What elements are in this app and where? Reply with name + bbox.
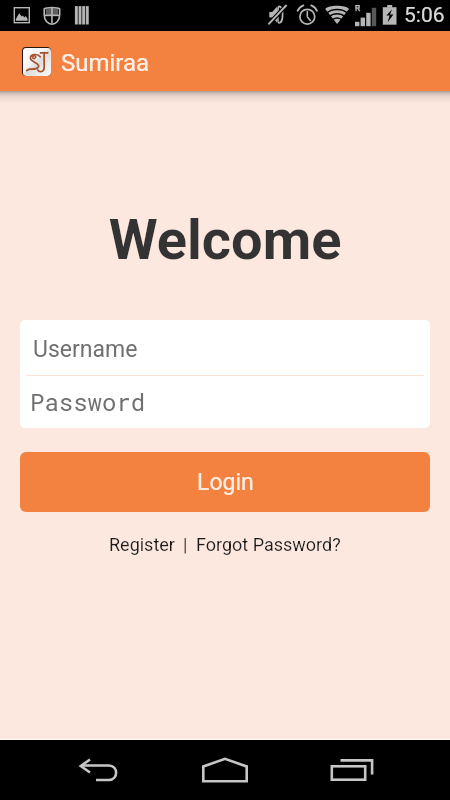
staticText: Welcome (0, 207, 450, 273)
staticText: 5:06 (404, 3, 445, 28)
button[interactable]: Back (67, 740, 135, 800)
staticText: Register (109, 534, 175, 555)
staticText: Username (33, 336, 138, 363)
button[interactable]: Home (191, 740, 259, 800)
staticText: | (183, 534, 188, 555)
button[interactable]: Sumiraa logo (22, 47, 51, 76)
staticText: Password (30, 386, 146, 418)
button[interactable]: Forgot Password? (196, 534, 341, 555)
button[interactable]: Username (20, 320, 430, 375)
button[interactable]: Register (109, 534, 175, 555)
button[interactable]: Recent apps (318, 740, 386, 800)
staticText: Login (197, 469, 254, 496)
staticText: Forgot Password? (196, 534, 341, 555)
staticText: Sumiraa (61, 49, 150, 77)
button[interactable]: Login (20, 452, 430, 512)
button[interactable]: Password (20, 376, 430, 428)
